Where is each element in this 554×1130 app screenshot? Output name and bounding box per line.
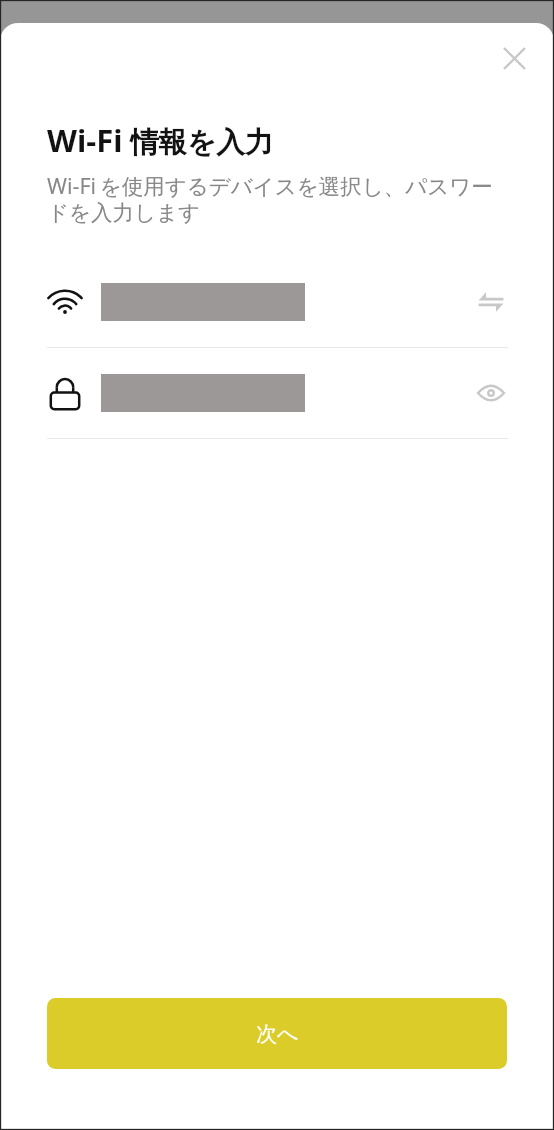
staticText: Wi-Fi	[47, 119, 123, 161]
staticText: 次へ	[256, 1021, 299, 1047]
button[interactable]: Close	[492, 36, 536, 80]
staticText: Wi-Fi を使用するデバイスを選択し、パスワードを入力します	[47, 171, 508, 227]
staticText: 情報を入力	[130, 125, 274, 161]
button[interactable]: Show password	[474, 376, 508, 410]
button[interactable]: 次へ	[47, 998, 507, 1069]
button[interactable]: Show password	[0, 348, 554, 438]
button[interactable]: Switch network	[474, 285, 508, 319]
button[interactable]: Switch network	[0, 257, 554, 347]
